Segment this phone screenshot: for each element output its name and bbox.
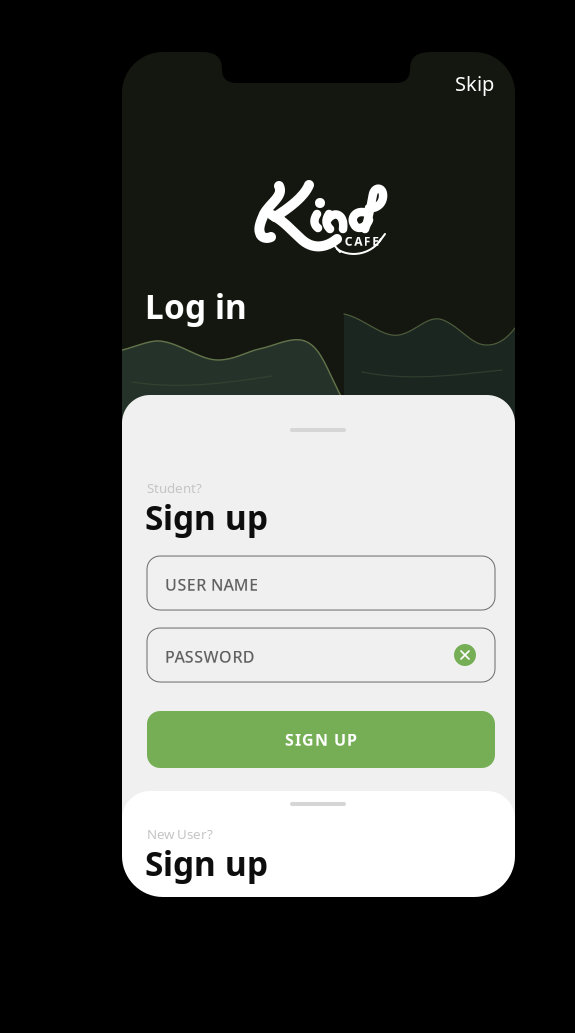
button[interactable]: SIGN UP: [147, 711, 495, 768]
button[interactable]: Clear password: [450, 640, 480, 670]
staticText: SIGN UP: [285, 729, 357, 750]
staticText: A: [354, 233, 362, 249]
button[interactable]: Skip: [439, 60, 510, 107]
staticText: USER NAME: [165, 574, 258, 595]
staticText: Student?: [147, 479, 202, 497]
staticText: Sign up: [145, 841, 268, 885]
staticText: E: [372, 233, 379, 249]
staticText: New User?: [147, 825, 213, 843]
staticText: Sign up: [145, 495, 268, 539]
staticText: Log in: [145, 284, 247, 328]
staticText: F: [364, 233, 371, 249]
staticText: C: [345, 233, 353, 249]
staticText: Skip: [455, 70, 494, 97]
staticText: PASSWORD: [165, 646, 255, 667]
